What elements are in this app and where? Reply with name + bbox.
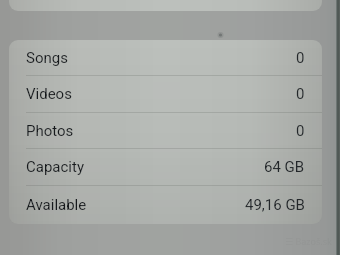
button[interactable]: Videos <box>9 76 322 112</box>
staticText: Capacity <box>26 158 85 176</box>
button[interactable]: Available <box>9 186 322 224</box>
staticText: 0 <box>296 122 305 140</box>
staticText: 64 GB <box>264 158 305 176</box>
staticText: 0 <box>296 85 305 103</box>
button[interactable]: Capacity <box>9 149 322 185</box>
staticText: 0 <box>296 49 305 67</box>
staticText: Available <box>26 196 87 214</box>
button[interactable]: Photos <box>9 113 322 148</box>
button[interactable]: Songs <box>9 40 322 75</box>
staticText: 49,16 GB <box>245 196 305 214</box>
staticText: Songs <box>26 49 68 67</box>
staticText: Videos <box>26 85 72 103</box>
staticText: Photos <box>26 122 74 140</box>
